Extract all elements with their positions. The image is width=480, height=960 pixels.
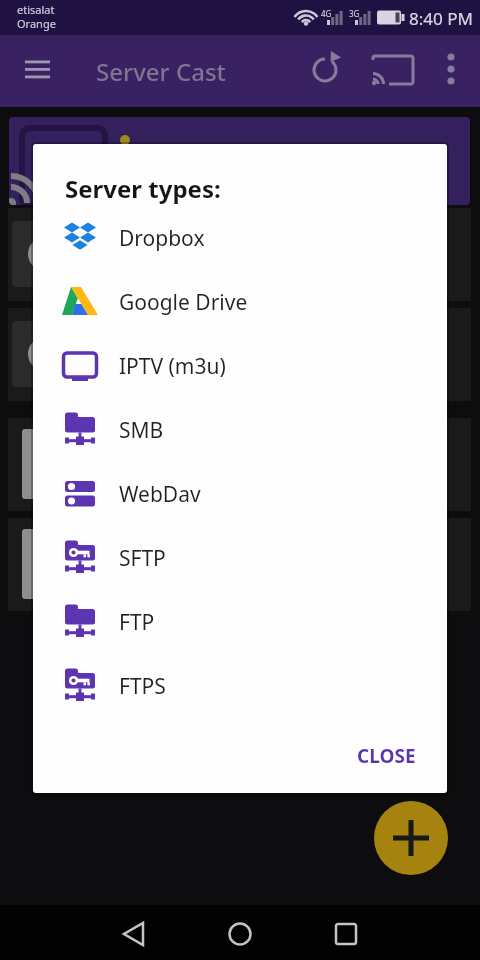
button[interactable]: WebDav — [48, 466, 438, 522]
staticText: WebDav — [119, 480, 201, 509]
staticText: IPTV (m3u) — [119, 352, 226, 381]
staticText: 3G — [349, 8, 360, 19]
button[interactable]: FTP — [48, 594, 438, 650]
button[interactable]: SMB — [48, 402, 438, 458]
button[interactable]: SFTP — [48, 530, 438, 586]
staticText: 8:40 PM — [409, 7, 473, 30]
button[interactable] — [12, 47, 60, 95]
staticText: Orange — [17, 16, 56, 31]
button[interactable] — [374, 801, 448, 875]
staticText: Dropbox — [119, 224, 205, 253]
button[interactable] — [369, 46, 417, 94]
staticText: FTPS — [119, 672, 166, 701]
button[interactable] — [322, 910, 370, 958]
button[interactable]: Dropbox — [48, 210, 438, 266]
button[interactable] — [216, 910, 264, 958]
button[interactable]: CLOSE — [346, 738, 426, 774]
staticText: 4G — [321, 8, 332, 19]
staticText: Server Cast — [96, 55, 226, 88]
staticText: Server types: — [65, 172, 221, 205]
staticText: CLOSE — [357, 743, 416, 769]
staticText: Google Drive — [119, 288, 248, 317]
staticText: FTP — [119, 608, 155, 637]
button[interactable]: FTPS — [48, 658, 438, 714]
button[interactable] — [427, 46, 475, 94]
staticText: etisalat — [17, 2, 55, 17]
staticText: SFTP — [119, 544, 166, 573]
staticText: SMB — [119, 416, 164, 445]
button[interactable] — [110, 910, 158, 958]
button[interactable]: IPTV (m3u) — [48, 338, 438, 394]
button[interactable] — [301, 46, 349, 94]
button[interactable]: Google Drive — [48, 274, 438, 330]
